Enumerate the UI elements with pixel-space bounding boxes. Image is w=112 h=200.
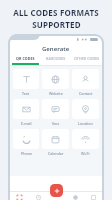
staticText: OTHER CODES bbox=[74, 56, 100, 61]
staticText: SUPPORTED bbox=[32, 19, 81, 30]
button[interactable]: BARCODES bbox=[40, 56, 71, 61]
staticText: Location bbox=[78, 121, 93, 126]
button[interactable]: QR CODES bbox=[10, 56, 40, 61]
button[interactable]: Calendar bbox=[42, 129, 69, 156]
staticText: Website bbox=[49, 91, 63, 96]
button[interactable]: Location bbox=[72, 99, 99, 126]
button[interactable]: Create code bbox=[50, 184, 63, 197]
button[interactable]: Favorites bbox=[66, 191, 84, 200]
button[interactable]: Phone bbox=[13, 129, 39, 156]
button[interactable]: E-mail bbox=[13, 99, 39, 126]
staticText: QR CODES bbox=[16, 56, 35, 61]
staticText: Sms bbox=[52, 121, 60, 126]
staticText: Wi-Fi bbox=[81, 151, 90, 156]
button[interactable]: Text bbox=[13, 69, 39, 96]
staticText: Contact bbox=[79, 91, 93, 96]
staticText: ALL CODES FORMATS bbox=[13, 7, 99, 18]
button[interactable]: History bbox=[29, 191, 48, 200]
button[interactable]: Scan bbox=[10, 191, 29, 200]
button[interactable]: Website bbox=[42, 69, 69, 96]
staticText: Text bbox=[22, 91, 30, 96]
button[interactable]: OTHER CODES bbox=[71, 56, 102, 61]
staticText: Phone bbox=[21, 151, 32, 156]
staticText: BARCODES bbox=[46, 56, 66, 61]
button[interactable]: Contact bbox=[72, 69, 99, 96]
staticText: Calendar bbox=[48, 151, 64, 156]
button[interactable]: Settings bbox=[84, 191, 102, 200]
button[interactable]: Wi-Fi bbox=[72, 129, 99, 156]
staticText: Generate bbox=[42, 45, 70, 53]
button[interactable]: Sms bbox=[42, 99, 69, 126]
staticText: E-mail bbox=[21, 121, 32, 126]
